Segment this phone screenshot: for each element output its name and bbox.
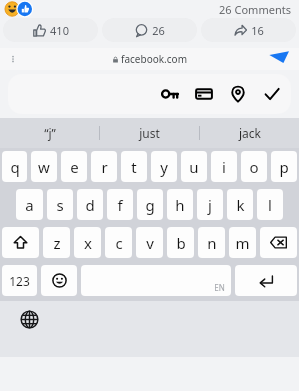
- button[interactable]: r: [91, 151, 117, 182]
- button[interactable]: p: [271, 151, 297, 182]
- button[interactable]: z: [43, 227, 70, 258]
- button[interactable]: More options: [8, 54, 18, 64]
- staticText: q: [10, 157, 20, 177]
- staticText: g: [145, 195, 155, 215]
- button[interactable]: g: [137, 189, 163, 220]
- staticText: 16: [251, 23, 264, 38]
- button[interactable]: 410: [3, 18, 98, 42]
- button[interactable]: just: [100, 118, 199, 148]
- button[interactable]: a: [16, 189, 43, 220]
- staticText: j: [208, 195, 212, 215]
- staticText: just: [139, 125, 160, 141]
- staticText: f: [117, 195, 123, 215]
- button[interactable]: v: [136, 227, 163, 258]
- staticText: u: [189, 157, 199, 177]
- button[interactable]: 16: [201, 18, 296, 42]
- button[interactable]: Change keyboard language: [18, 308, 40, 330]
- staticText: s: [56, 195, 64, 215]
- staticText: d: [85, 195, 95, 215]
- staticText: “j”: [44, 125, 56, 141]
- button[interactable]: q: [2, 151, 27, 182]
- button[interactable]: i: [211, 151, 237, 182]
- staticText: y: [160, 157, 168, 177]
- staticText: r: [101, 157, 108, 177]
- staticText: n: [207, 233, 217, 253]
- button[interactable]: Done: [263, 85, 281, 103]
- button[interactable]: Passwords: [161, 85, 179, 103]
- staticText: EN: [214, 282, 225, 293]
- staticText: x: [84, 233, 92, 253]
- staticText: i: [222, 157, 226, 177]
- button[interactable]: d: [77, 189, 103, 220]
- staticText: w: [38, 157, 50, 177]
- button[interactable]: y: [151, 151, 177, 182]
- button[interactable]: Payment methods: [195, 85, 213, 103]
- button[interactable]: Addresses: [229, 85, 247, 103]
- staticText: 123: [9, 273, 30, 289]
- staticText: jack: [239, 125, 261, 141]
- button[interactable]: b: [167, 227, 194, 258]
- button[interactable]: m: [229, 227, 256, 258]
- staticText: facebook.com: [121, 52, 187, 66]
- staticText: o: [249, 157, 259, 177]
- button[interactable]: l: [257, 189, 283, 220]
- button[interactable]: h: [167, 189, 193, 220]
- staticText: c: [115, 233, 123, 253]
- button[interactable]: c: [105, 227, 132, 258]
- button[interactable]: u: [181, 151, 207, 182]
- button[interactable]: Emoji: [41, 265, 77, 296]
- staticText: e: [70, 157, 79, 177]
- staticText: a: [25, 195, 34, 215]
- staticText: t: [131, 157, 137, 177]
- staticText: 410: [50, 23, 69, 38]
- button[interactable]: Space: [81, 265, 231, 296]
- staticText: m: [235, 233, 250, 253]
- staticText: b: [176, 233, 186, 253]
- button[interactable]: x: [74, 227, 101, 258]
- staticText: p: [279, 157, 289, 177]
- button[interactable]: k: [227, 189, 253, 220]
- button[interactable]: o: [241, 151, 267, 182]
- button[interactable]: n: [198, 227, 225, 258]
- other: Send: [269, 51, 289, 63]
- button[interactable]: Shift: [2, 227, 39, 258]
- button[interactable]: w: [31, 151, 57, 182]
- button[interactable]: jack: [200, 118, 299, 148]
- button[interactable]: 26 Comments: [219, 2, 291, 17]
- button[interactable]: t: [121, 151, 147, 182]
- staticText: z: [53, 233, 61, 253]
- button[interactable]: 123: [2, 265, 37, 296]
- button[interactable]: j: [197, 189, 223, 220]
- button[interactable]: Backspace: [260, 227, 297, 258]
- button[interactable]: “j”: [0, 118, 99, 148]
- button[interactable]: 26: [102, 18, 197, 42]
- staticText: v: [146, 233, 154, 253]
- staticText: k: [236, 195, 245, 215]
- staticText: 26: [152, 23, 165, 38]
- staticText: h: [175, 195, 185, 215]
- staticText: l: [268, 195, 272, 215]
- button[interactable]: Enter: [235, 265, 297, 296]
- button[interactable]: s: [47, 189, 73, 220]
- button[interactable]: e: [61, 151, 87, 182]
- button[interactable]: f: [107, 189, 133, 220]
